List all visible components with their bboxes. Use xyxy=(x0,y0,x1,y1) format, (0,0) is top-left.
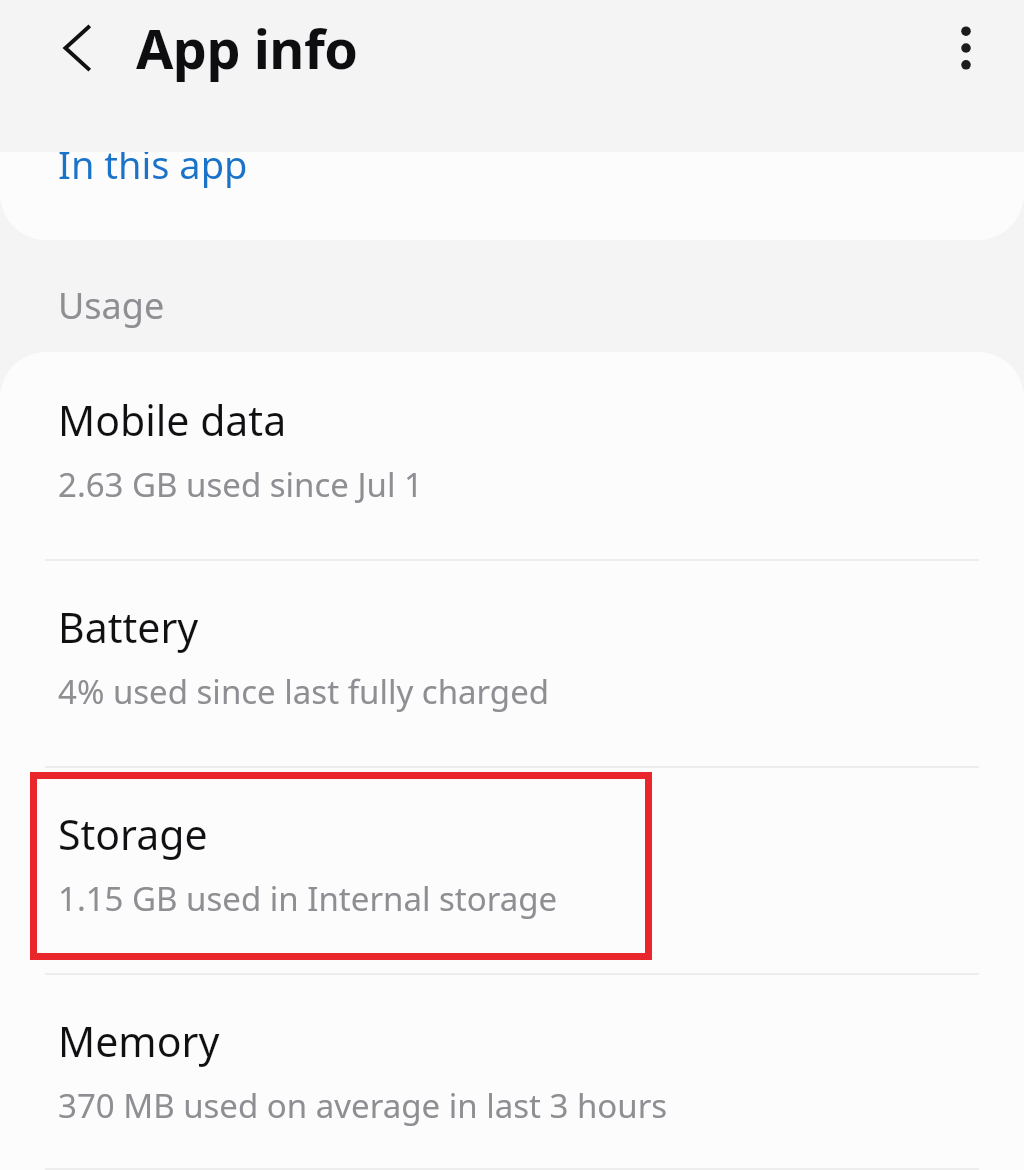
button[interactable]: More options xyxy=(918,0,1014,96)
button[interactable]: Memory xyxy=(0,975,1024,1168)
staticText: 2.63 GB used since Jul 1 xyxy=(58,462,423,507)
button[interactable]: In this app xyxy=(0,152,1024,240)
button[interactable]: Navigate up xyxy=(32,0,128,96)
staticText: Battery xyxy=(58,599,199,655)
staticText: 1.15 GB used in Internal storage xyxy=(58,876,558,921)
staticText: Mobile data xyxy=(58,392,287,448)
staticText: Usage xyxy=(58,281,165,330)
staticText: Memory xyxy=(58,1013,220,1069)
staticText: In this app xyxy=(58,152,248,190)
staticText: 370 MB used on average in last 3 hours xyxy=(58,1083,668,1128)
staticText: 4% used since last fully charged xyxy=(58,669,550,714)
staticText: Storage xyxy=(58,806,208,862)
staticText: App info xyxy=(136,11,358,85)
button[interactable]: Mobile data xyxy=(0,352,1024,559)
button[interactable]: Storage xyxy=(0,768,1024,973)
button[interactable]: Battery xyxy=(0,561,1024,766)
